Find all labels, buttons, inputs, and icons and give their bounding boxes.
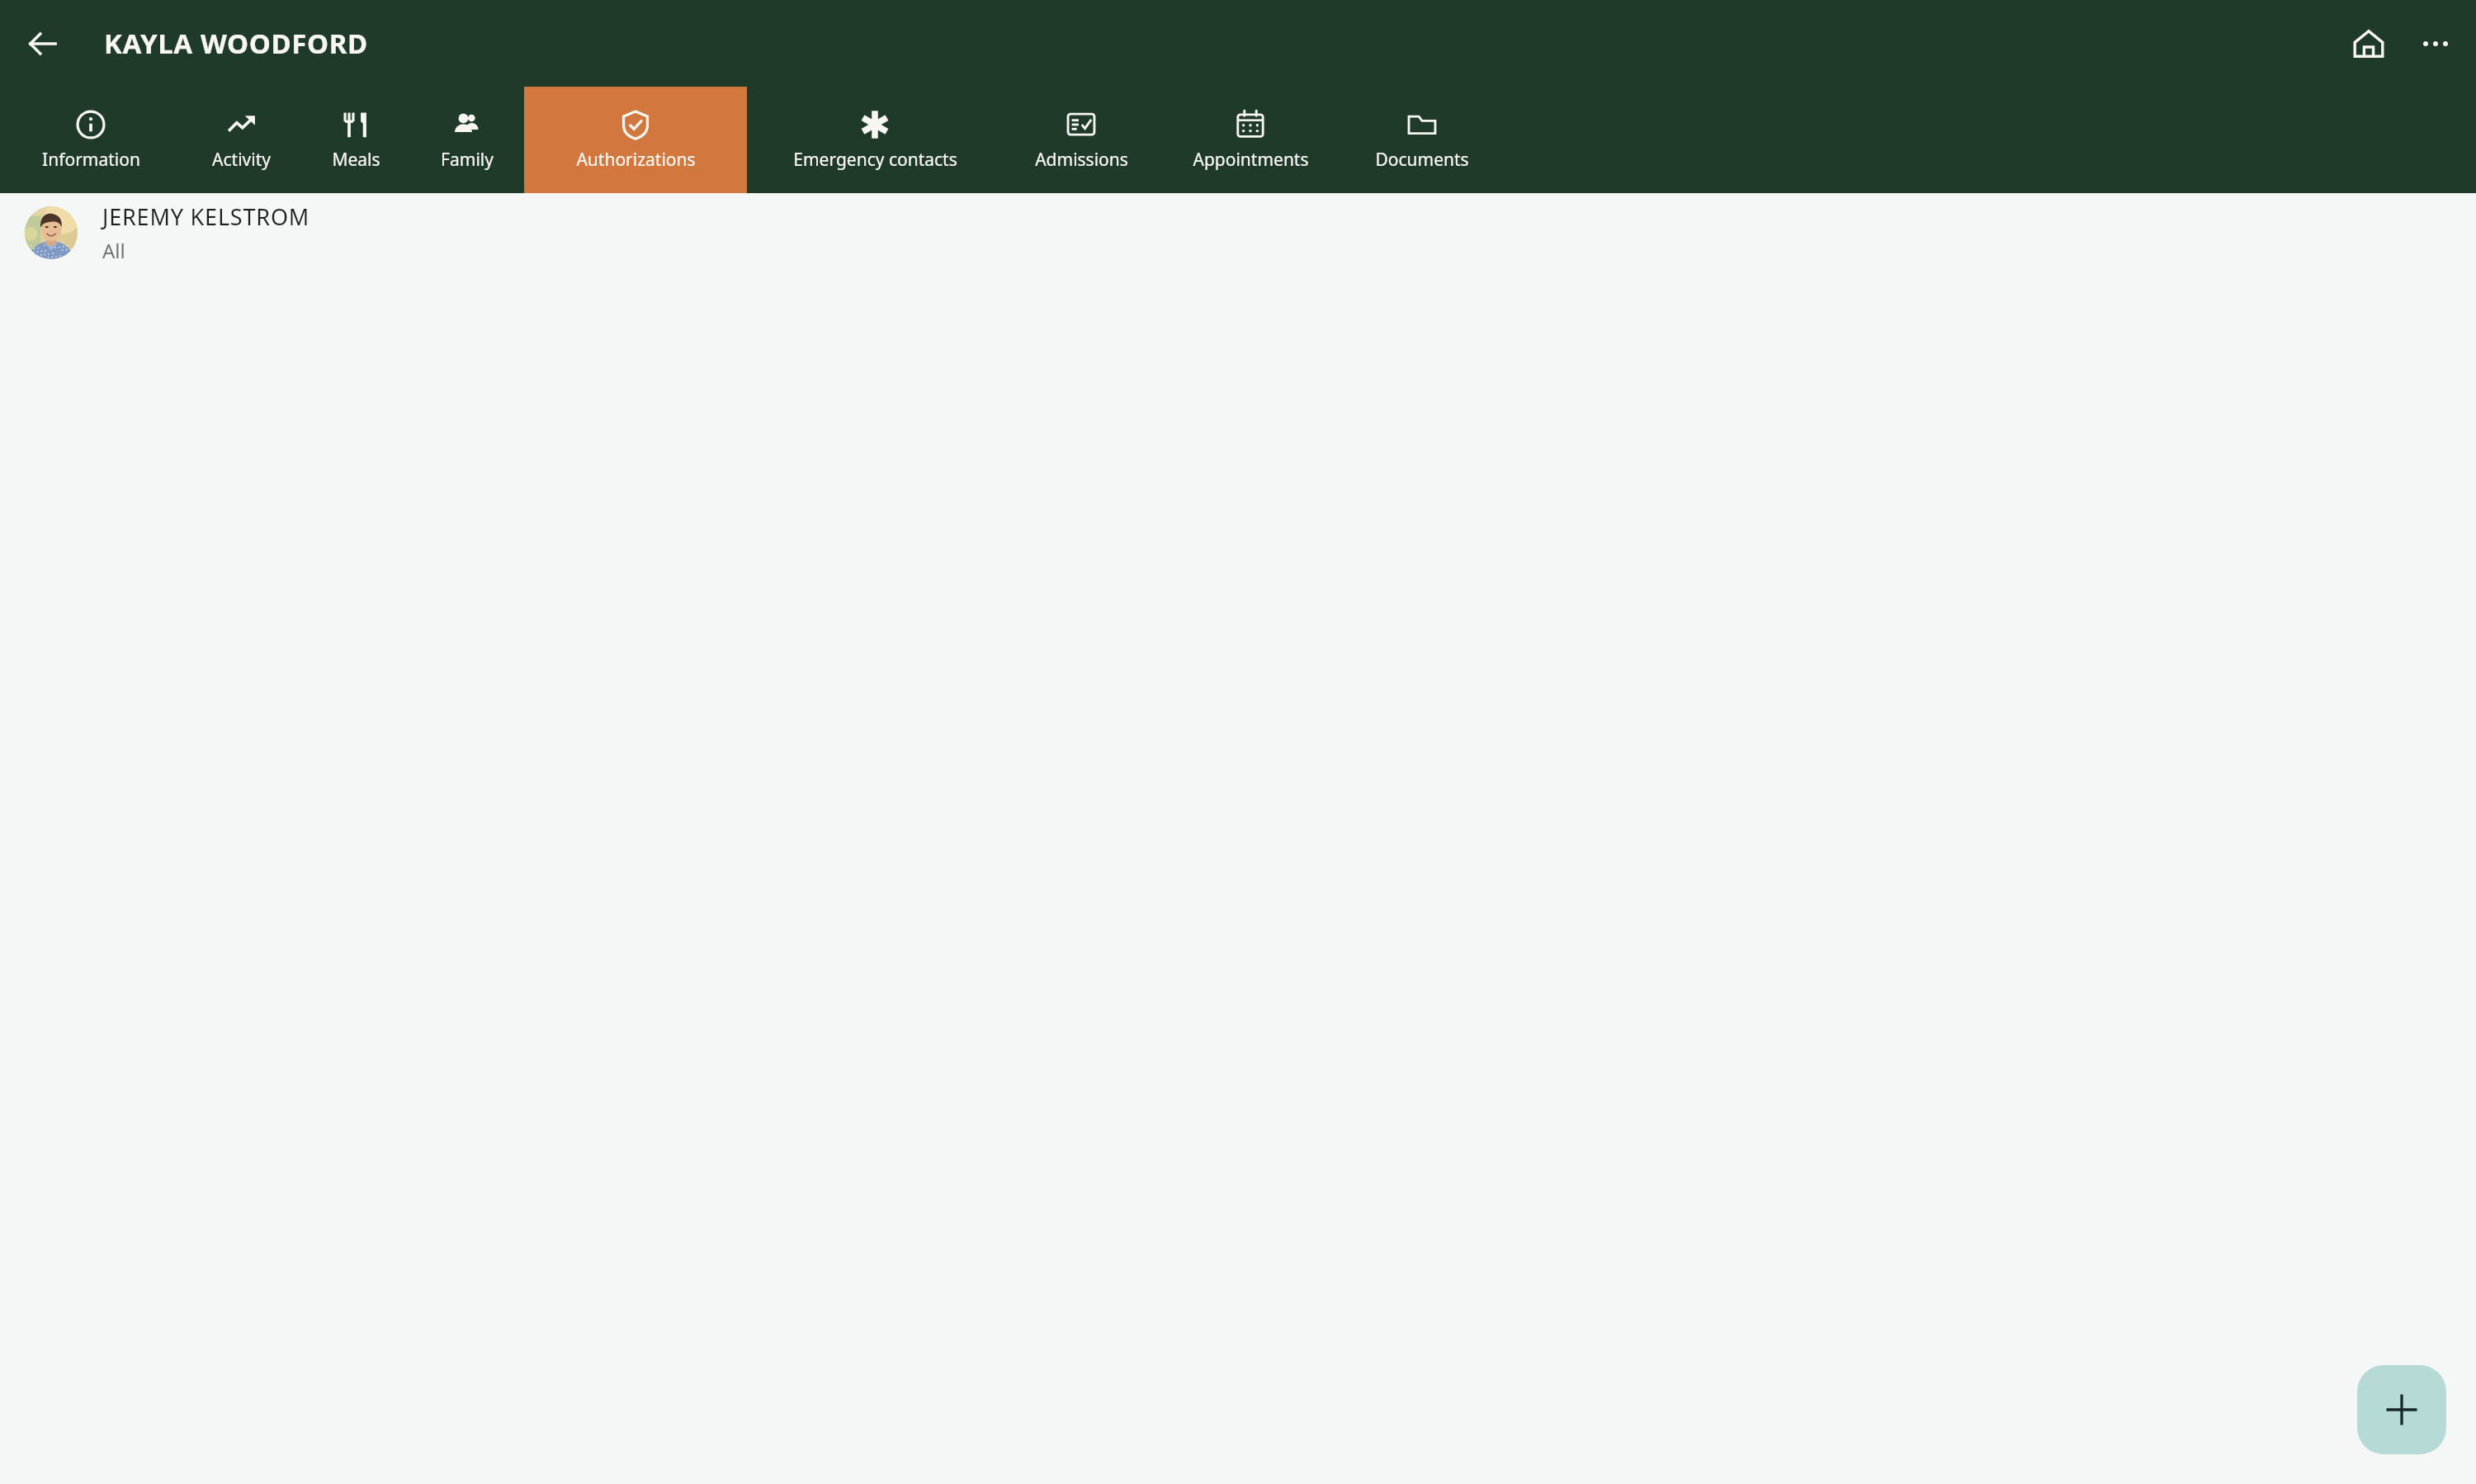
button[interactable]: Activity xyxy=(182,87,301,193)
button[interactable]: Emergency contacts xyxy=(747,87,1003,193)
staticText: Admissions xyxy=(1035,148,1128,172)
button[interactable]: Information xyxy=(0,87,182,193)
button[interactable]: Home xyxy=(2337,12,2400,75)
staticText: Activity xyxy=(212,148,271,172)
button[interactable]: Appointments xyxy=(1160,87,1341,193)
button[interactable]: Authorizations xyxy=(524,87,747,193)
button[interactable]: Add authorization xyxy=(2357,1365,2446,1454)
staticText: Authorizations xyxy=(576,148,696,172)
staticText: Information xyxy=(42,148,140,172)
staticText: All xyxy=(102,237,125,264)
button[interactable]: More options xyxy=(2407,15,2464,73)
button[interactable]: Meals xyxy=(301,87,410,193)
button[interactable]: JEREMY KELSTROM xyxy=(0,193,2476,272)
button[interactable]: Back xyxy=(12,12,74,75)
button[interactable]: Admissions xyxy=(1003,87,1160,193)
staticText: JEREMY KELSTROM xyxy=(102,201,310,232)
staticText: Appointments xyxy=(1193,148,1309,172)
staticText: Meals xyxy=(332,148,380,172)
button[interactable]: Family xyxy=(410,87,524,193)
staticText: Emergency contacts xyxy=(793,148,957,172)
staticText: KAYLA WOODFORD xyxy=(104,25,368,62)
button[interactable]: Documents xyxy=(1341,87,1503,193)
staticText: Documents xyxy=(1375,148,1469,172)
staticText: Family xyxy=(441,148,494,172)
